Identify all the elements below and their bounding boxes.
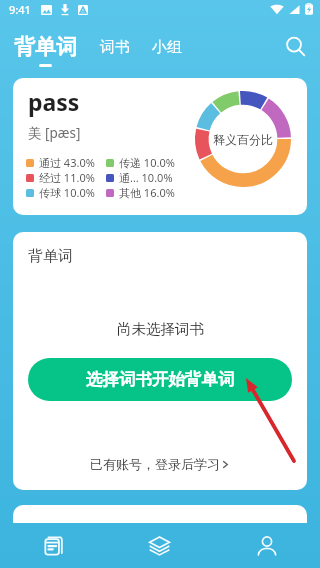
staticText: 传球 10.0%	[39, 185, 95, 200]
staticText: 背单词	[28, 247, 73, 266]
button[interactable]: 小组	[152, 38, 182, 57]
staticText: 美 [pæs]	[28, 124, 81, 142]
button[interactable]: Word books	[0, 522, 106, 568]
staticText: 9:41	[9, 2, 31, 17]
staticText: 通过 43.0%	[39, 155, 95, 170]
staticText: 其他 16.0%	[119, 185, 175, 200]
staticText: 传递 10.0%	[119, 155, 175, 170]
staticText: 释义百分比	[213, 132, 273, 147]
button[interactable]: 已有账号，登录后学习	[90, 456, 231, 472]
staticText: 背单词	[14, 34, 77, 60]
button[interactable]: Word lists	[106, 522, 213, 568]
staticText: 尚未选择词书	[117, 320, 204, 338]
button[interactable]: 背单词	[14, 34, 77, 67]
staticText: 选择词书开始背单词	[86, 369, 235, 390]
staticText: 经过 11.0%	[39, 170, 95, 185]
staticText: pass	[28, 86, 80, 117]
button[interactable]: 词书	[100, 38, 130, 57]
button[interactable]: Profile	[213, 522, 320, 568]
staticText: 通… 10.0%	[119, 170, 173, 185]
button[interactable]: Search	[279, 30, 311, 62]
button[interactable]: 选择词书开始背单词	[28, 358, 292, 401]
staticText: 已有账号，登录后学习	[90, 456, 220, 472]
